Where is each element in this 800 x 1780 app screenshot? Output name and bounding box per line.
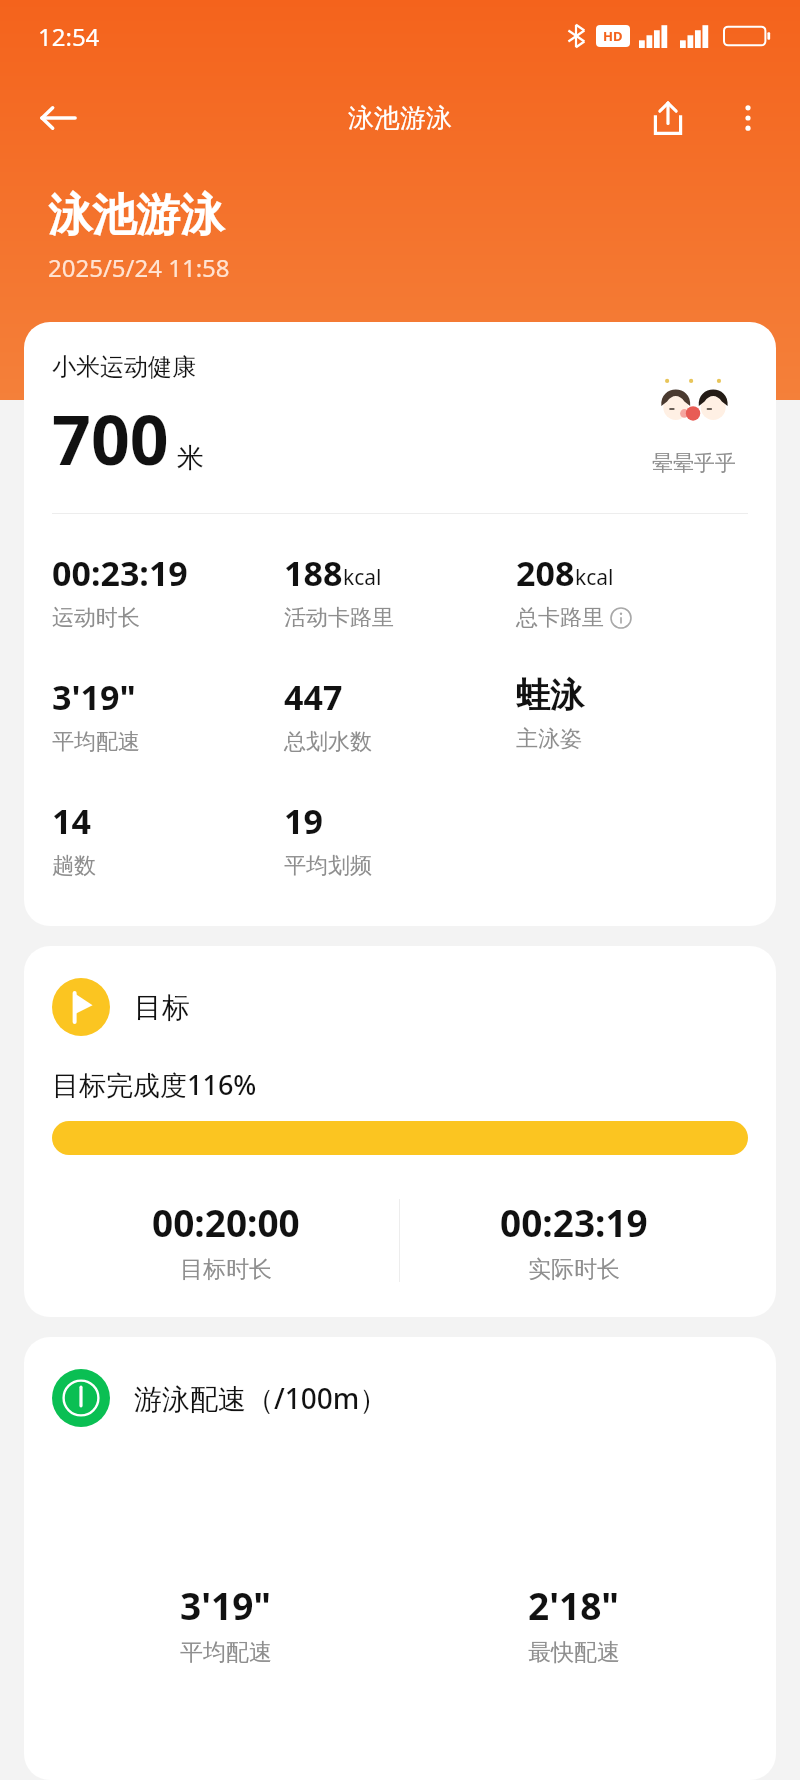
staticText: 实际时长	[528, 1255, 620, 1284]
staticText: 晕晕乎乎	[652, 450, 736, 476]
staticText: 游泳配速（/100m）	[134, 1379, 388, 1417]
staticText: 700	[52, 392, 169, 485]
staticText: 19	[284, 798, 323, 844]
staticText: 00:23:19	[500, 1197, 648, 1247]
button[interactable]: 目标	[52, 978, 748, 1036]
staticText: 目标	[134, 990, 190, 1025]
button[interactable]: 游泳配速（/100m）	[52, 1369, 748, 1427]
staticText: 447	[284, 674, 343, 720]
staticText: 总卡路里	[516, 604, 604, 632]
staticText: 188	[284, 550, 343, 596]
staticText: 泳池游泳	[48, 188, 224, 243]
button[interactable]: Share	[636, 86, 700, 150]
staticText: 目标时长	[180, 1255, 272, 1284]
staticText: 运动时长	[52, 604, 140, 632]
staticText: 活动卡路里	[284, 604, 394, 632]
staticText: 12:54	[38, 20, 100, 53]
staticText: 小米运动健康	[52, 352, 196, 382]
button[interactable]: More options	[716, 86, 780, 150]
staticText: 趟数	[52, 852, 96, 880]
staticText: 平均划频	[284, 852, 372, 880]
button[interactable]: Back	[26, 86, 90, 150]
staticText: kcal	[575, 563, 614, 592]
staticText: 总划水数	[284, 728, 372, 756]
staticText: 泳池游泳	[348, 102, 452, 135]
staticText: 蛙泳	[516, 674, 584, 717]
staticText: 最快配速	[528, 1638, 620, 1667]
staticText: 00:23:19	[52, 550, 188, 596]
staticText: 2'18"	[528, 1580, 620, 1630]
staticText: 208	[516, 550, 575, 596]
staticText: 主泳姿	[516, 725, 582, 753]
staticText: 目标完成度116%	[52, 1066, 257, 1103]
staticText: 14	[52, 798, 91, 844]
staticText: 00:20:00	[152, 1197, 300, 1247]
staticText: HD	[603, 27, 623, 45]
staticText: 2025/5/24 11:58	[48, 251, 230, 284]
staticText: 平均配速	[180, 1638, 272, 1667]
staticText: 3'19"	[52, 674, 136, 720]
staticText: 米	[177, 441, 204, 475]
staticText: kcal	[343, 563, 382, 592]
staticText: 3'19"	[180, 1580, 272, 1630]
staticText: 平均配速	[52, 728, 140, 756]
